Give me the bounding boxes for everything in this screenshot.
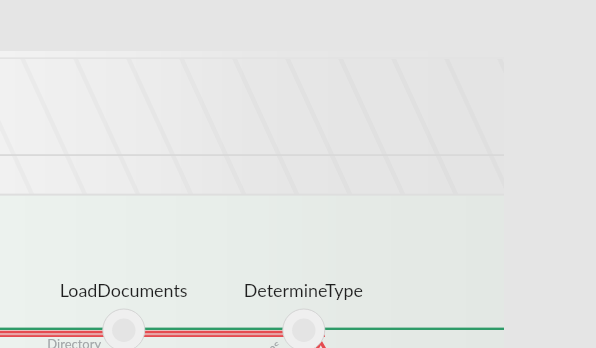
button[interactable] xyxy=(0,0,596,348)
